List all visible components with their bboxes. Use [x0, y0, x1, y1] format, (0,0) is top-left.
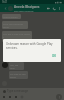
button[interactable]: More options — [57, 6, 62, 11]
staticText: You're driven — [3, 15, 18, 18]
staticText: Yes, we may — [10, 63, 23, 69]
button[interactable]: Gallery — [14, 95, 18, 99]
staticText: Who can outwrite them — [3, 22, 27, 28]
button[interactable]: Yes, we may — [9, 62, 24, 70]
staticText: Type a message — [7, 89, 28, 93]
button[interactable]: It's free at the place — [9, 71, 28, 79]
button[interactable]: Sticker — [20, 95, 24, 99]
button[interactable]: Record voice message — [56, 94, 62, 100]
staticText: It's free at the place — [10, 72, 27, 78]
button[interactable]: Who can outwrite them — [2, 21, 28, 29]
staticText: Aneela Bhatpara — [14, 5, 40, 9]
button[interactable]: Will get a free sun today, I shall — [2, 31, 32, 42]
button[interactable]: Video call — [45, 5, 51, 11]
button[interactable]: Camera — [8, 95, 12, 99]
button[interactable]: Back — [2, 5, 8, 11]
staticText: Will get a free sun today, I shall — [3, 32, 31, 41]
staticText: last seen recently — [14, 9, 34, 12]
button[interactable]: Attach — [2, 95, 6, 99]
staticText: OK — [52, 54, 56, 58]
button[interactable]: You're driven — [2, 14, 21, 19]
staticText: Unknown reason with Google Play services… — [6, 42, 58, 50]
button[interactable]: Emoji — [2, 89, 6, 93]
button[interactable]: Call — [51, 5, 57, 11]
button[interactable]: OK — [50, 53, 58, 59]
staticText: 9:41 — [2, 0, 8, 4]
